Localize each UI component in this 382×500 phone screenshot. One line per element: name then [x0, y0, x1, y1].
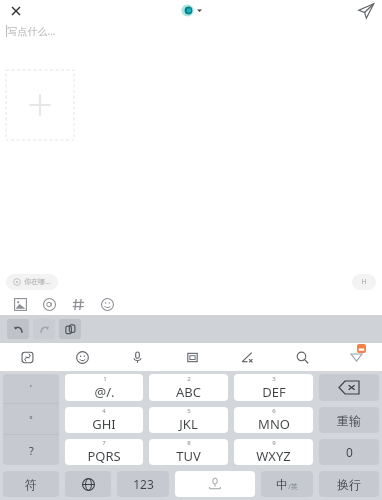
button[interactable]: 123	[117, 471, 169, 497]
button[interactable]: Sogou	[0, 343, 55, 371]
button[interactable]: 3	[234, 374, 313, 401]
button[interactable]: 8	[149, 439, 228, 465]
staticText: DEF	[262, 383, 286, 401]
button[interactable]: 9	[234, 439, 313, 465]
button[interactable]: Collapse keyboard	[330, 343, 382, 371]
button[interactable]: Input language	[65, 471, 111, 497]
staticText: H	[361, 277, 367, 287]
staticText: /英	[288, 482, 298, 492]
staticText: JKL	[179, 415, 198, 433]
staticText: 8	[187, 439, 191, 447]
button[interactable]: 7	[65, 439, 143, 465]
staticText: @/.	[94, 383, 115, 401]
staticText: ABC	[176, 383, 201, 401]
button[interactable]: Backspace	[319, 374, 379, 401]
staticText: 重输	[337, 413, 361, 428]
button[interactable]: 4	[65, 407, 143, 433]
button[interactable]: °	[3, 404, 59, 434]
button[interactable]: 6	[234, 407, 313, 433]
staticText: ?	[29, 443, 34, 458]
button[interactable]: 重输	[319, 407, 379, 433]
staticText: 6	[272, 407, 276, 415]
button[interactable]: 1	[65, 374, 143, 401]
button[interactable]: Search	[275, 343, 330, 371]
button[interactable]: Emoji	[93, 293, 121, 315]
staticText: 3	[272, 375, 276, 383]
staticText: 1	[103, 375, 107, 383]
staticText: 5	[187, 407, 191, 415]
staticText: GHI	[92, 415, 116, 433]
staticText: 2	[187, 375, 191, 383]
button[interactable]: Add image	[6, 70, 74, 140]
button[interactable]: Handwriting	[220, 343, 275, 371]
button[interactable]	[181, 4, 202, 17]
button[interactable]: ?	[3, 435, 59, 465]
button[interactable]: Send	[357, 2, 375, 20]
staticText: MNO	[258, 415, 290, 433]
button[interactable]: 2	[149, 374, 228, 401]
staticText: WXYZ	[256, 447, 291, 465]
button[interactable]: 换行	[319, 471, 379, 497]
staticText: 写点什么...	[7, 24, 56, 38]
button[interactable]: Clipboard	[165, 343, 220, 371]
staticText: 中	[276, 477, 288, 492]
staticText: 你在哪...	[24, 277, 51, 287]
staticText: 9	[272, 439, 276, 447]
staticText: 123	[133, 476, 154, 492]
button[interactable]: 你在哪...	[6, 274, 58, 290]
button[interactable]: Image	[6, 293, 34, 315]
button[interactable]: 中	[261, 471, 313, 497]
button[interactable]: 5	[149, 407, 228, 433]
staticText: PQRS	[87, 447, 121, 465]
button[interactable]: Undo	[7, 319, 29, 339]
button[interactable]: Visibility	[352, 274, 376, 290]
button[interactable]: Close	[6, 1, 26, 21]
button[interactable]: Paste	[59, 319, 81, 339]
staticText: 4	[102, 407, 106, 415]
button[interactable]: 符	[3, 471, 59, 497]
staticText: 符	[25, 477, 37, 492]
staticText: '	[30, 383, 32, 394]
button[interactable]: Emoji	[55, 343, 110, 371]
button[interactable]: Redo	[33, 319, 55, 339]
staticText: 换行	[337, 477, 361, 492]
staticText: °	[29, 414, 33, 425]
button[interactable]: Mention	[35, 293, 63, 315]
staticText: TUV	[176, 447, 201, 465]
button[interactable]: Voice	[110, 343, 165, 371]
staticText: 7	[102, 439, 106, 447]
button[interactable]: 0	[319, 439, 379, 465]
staticText: 0	[346, 444, 353, 460]
button[interactable]: Space	[175, 471, 255, 497]
button[interactable]: Topic	[64, 293, 92, 315]
